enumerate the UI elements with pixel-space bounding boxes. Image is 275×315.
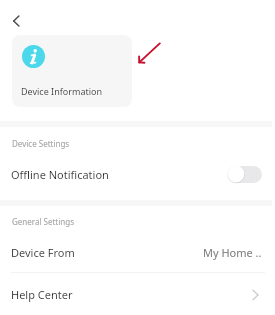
staticText: Offline Notification (11, 167, 109, 182)
button[interactable]: Device From (0, 234, 275, 270)
staticText: My Home .. (203, 245, 262, 260)
staticText: Device Settings (12, 138, 70, 149)
staticText: General Settings (12, 216, 75, 227)
button[interactable]: Device Information (12, 35, 132, 107)
staticText: Device From (11, 245, 75, 260)
staticText: Device Information (21, 85, 103, 97)
button[interactable]: Back (3, 8, 29, 34)
button[interactable]: Offline Notification (0, 157, 275, 191)
button[interactable]: Help Center (0, 276, 275, 312)
staticText: Help Center (11, 287, 73, 302)
